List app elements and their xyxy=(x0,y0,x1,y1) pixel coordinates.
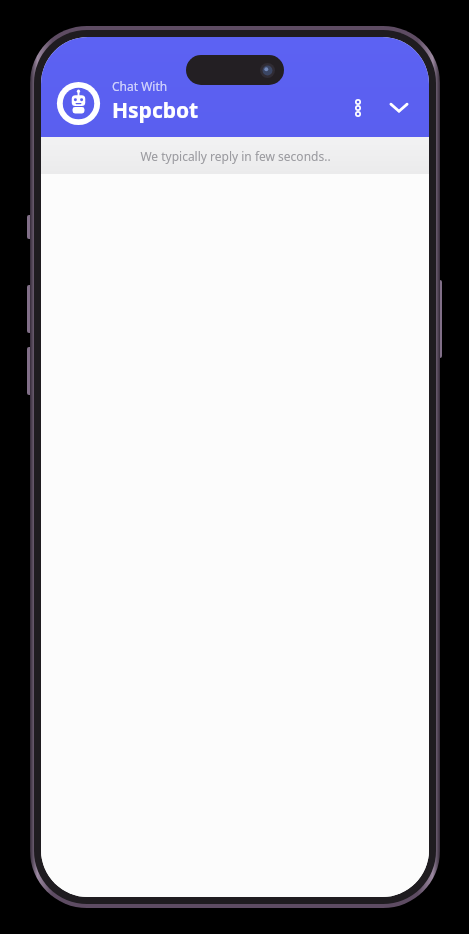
staticText: Chat With xyxy=(112,78,168,94)
staticText: Hspcbot xyxy=(112,96,199,125)
staticText: We typically reply in few seconds.. xyxy=(140,148,331,164)
button[interactable]: Chat With xyxy=(112,78,199,125)
button[interactable]: Minimize chat xyxy=(382,90,416,124)
button[interactable]: More options xyxy=(342,92,374,124)
button[interactable]: Hspcbot avatar xyxy=(56,81,101,126)
